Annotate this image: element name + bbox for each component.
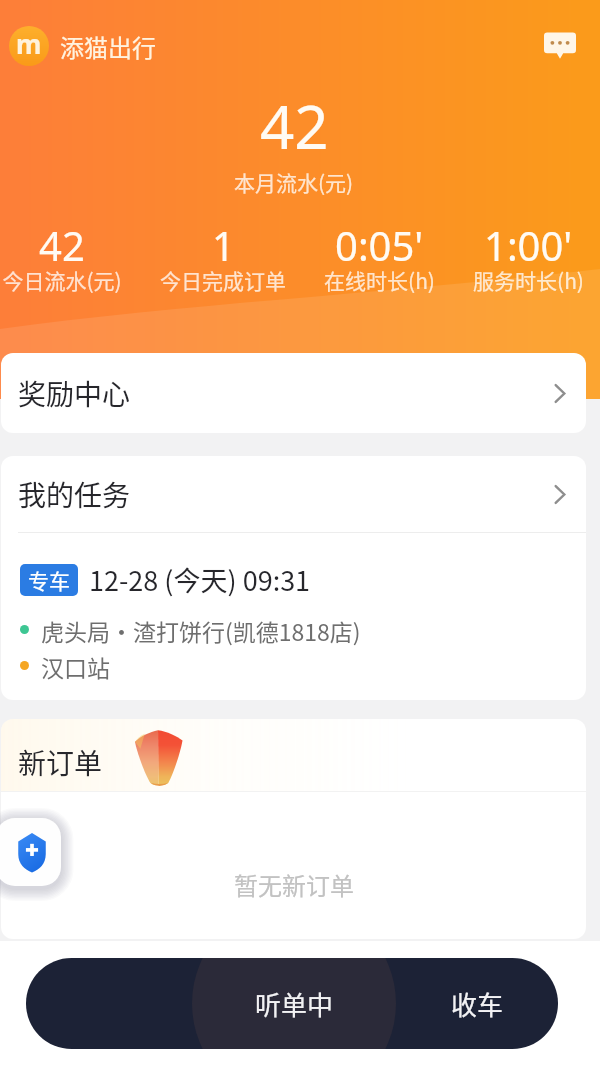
- staticText: 虎头局·渣打饼行(凯德1818店): [41, 614, 361, 647]
- staticText: 今日完成订单: [160, 265, 286, 295]
- staticText: 暂无新订单: [234, 867, 354, 902]
- staticText: 专车: [28, 565, 70, 595]
- staticText: 12-28 (今天) 09:31: [89, 560, 311, 599]
- staticText: 1:00': [484, 218, 573, 272]
- staticText: 添猫出行: [60, 29, 156, 64]
- staticText: 新订单: [18, 742, 103, 783]
- button[interactable]: 我的任务: [1, 456, 586, 532]
- staticText: 我的任务: [18, 474, 131, 515]
- staticText: 0:05': [335, 218, 424, 272]
- staticText: 本月流水(元): [234, 167, 354, 197]
- staticText: 汉口站: [41, 650, 110, 683]
- button[interactable]: 收车: [396, 958, 558, 1049]
- button[interactable]: 奖励中心: [1, 353, 586, 433]
- staticText: 在线时长(h): [324, 265, 435, 295]
- button[interactable]: Messages: [534, 20, 586, 72]
- staticText: 今日流水(元): [2, 265, 122, 295]
- staticText: 42: [39, 218, 85, 272]
- staticText: 服务时长(h): [473, 265, 584, 295]
- button[interactable]: Safety center: [0, 818, 61, 886]
- button[interactable]: 听单中: [192, 958, 396, 1049]
- staticText: m: [16, 26, 42, 61]
- staticText: 42: [260, 85, 329, 167]
- staticText: 1: [212, 218, 235, 272]
- button[interactable]: 专车: [1, 533, 586, 700]
- staticText: 收车: [451, 985, 504, 1023]
- staticText: 奖励中心: [18, 373, 131, 414]
- staticText: 听单中: [255, 985, 334, 1023]
- button[interactable]: Menu: [26, 958, 192, 1049]
